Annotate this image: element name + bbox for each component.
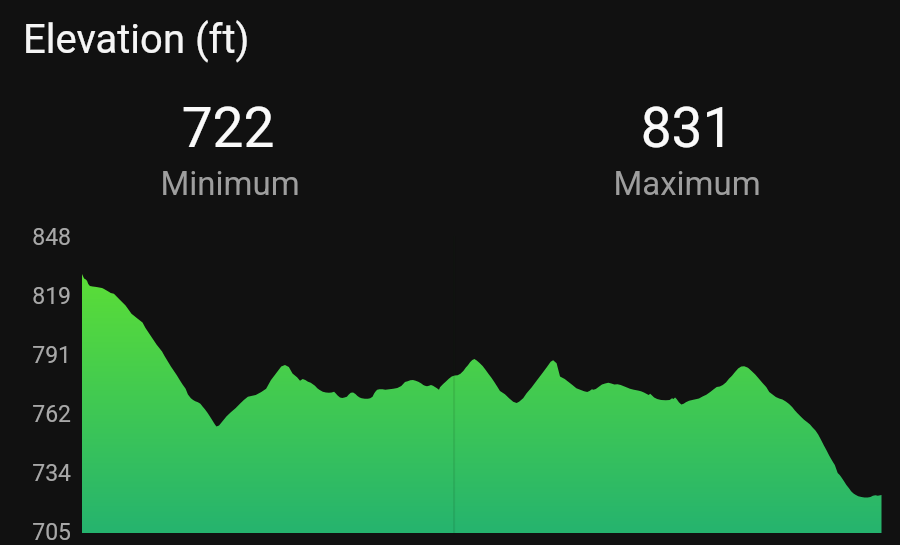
staticText: 734 <box>0 460 71 487</box>
button[interactable] <box>557 88 817 208</box>
staticText: Elevation (ft) <box>23 16 250 63</box>
staticText: 819 <box>0 283 71 310</box>
staticText: 831 <box>357 96 900 160</box>
staticText: 791 <box>0 342 71 369</box>
staticText: 762 <box>0 401 71 428</box>
button[interactable]: Elevation profile chart <box>0 0 900 545</box>
staticText: Maximum <box>489 164 885 203</box>
staticText: Minimum <box>32 164 428 203</box>
staticText: 722 <box>0 96 558 160</box>
staticText: 848 <box>0 224 71 251</box>
staticText: 705 <box>0 519 71 545</box>
button[interactable] <box>99 88 359 208</box>
